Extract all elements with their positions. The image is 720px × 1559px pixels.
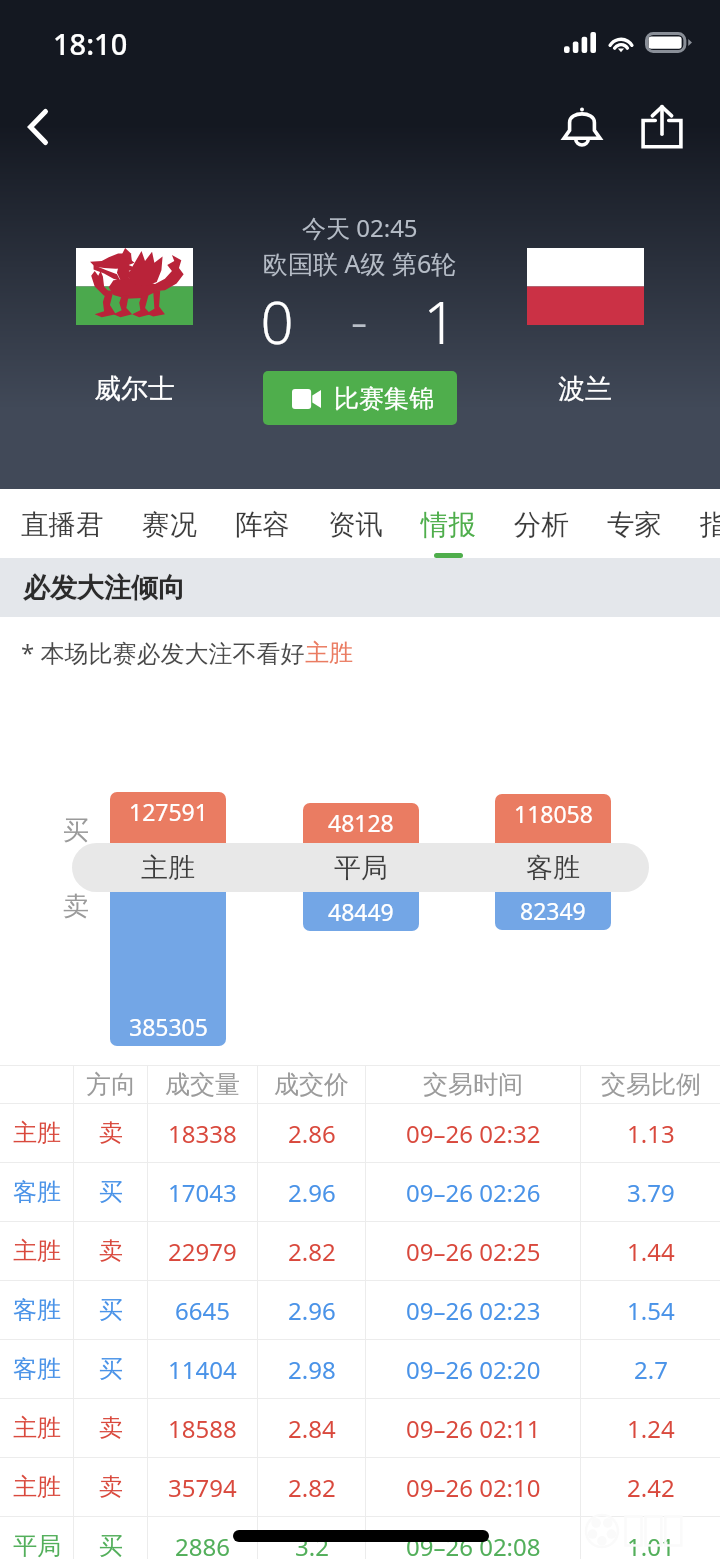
staticText: 卖 <box>99 1118 123 1148</box>
staticText: 赛况 <box>142 508 197 543</box>
staticText: 波兰 <box>558 372 612 406</box>
staticText: 2.86 <box>288 1117 336 1150</box>
staticText: 威尔士 <box>94 372 175 406</box>
staticText: 17043 <box>168 1176 237 1209</box>
staticText: 09–26 02:23 <box>406 1294 541 1327</box>
staticText: 18338 <box>168 1117 237 1150</box>
staticText: 指 <box>700 508 720 543</box>
staticText: 09–26 02:08 <box>406 1530 541 1559</box>
button[interactable]: Share <box>626 90 698 162</box>
staticText: 2.96 <box>288 1294 336 1327</box>
staticText: 主胜 <box>141 851 195 885</box>
staticText: 买 <box>99 1531 123 1559</box>
staticText: 22979 <box>168 1235 237 1268</box>
button[interactable]: Back <box>2 91 74 163</box>
staticText: 欧国联 A级 第6轮 <box>263 246 457 280</box>
staticText: 情报 <box>421 508 476 543</box>
staticText: 1.54 <box>627 1294 675 1327</box>
staticText: 3.79 <box>627 1176 675 1209</box>
staticText: 比赛集锦 <box>334 383 434 414</box>
button[interactable]: 情报 <box>402 493 495 557</box>
staticText: 成交量 <box>165 1069 240 1100</box>
staticText: 09–26 02:32 <box>406 1117 541 1150</box>
staticText: 18:10 <box>53 24 128 63</box>
staticText: 买 <box>99 1295 123 1325</box>
button[interactable]: Notifications <box>546 90 618 162</box>
staticText: 48449 <box>328 896 394 927</box>
staticText: 直播君 <box>21 508 104 543</box>
staticText: 1.13 <box>627 1117 675 1150</box>
staticText: 方向 <box>86 1069 136 1100</box>
staticText: 11404 <box>168 1353 237 1386</box>
staticText: 1 <box>420 282 460 361</box>
staticText: 卖 <box>63 890 89 923</box>
staticText: 主胜 <box>305 638 353 668</box>
staticText: 平局 <box>13 1531 61 1559</box>
staticText: 09–26 02:25 <box>406 1235 541 1268</box>
staticText: 48128 <box>328 807 394 838</box>
button[interactable]: 专家 <box>588 493 681 557</box>
staticText: 买 <box>99 1354 123 1384</box>
staticText: 资讯 <box>328 508 383 543</box>
staticText: 专家 <box>607 508 662 543</box>
staticText: 主胜 <box>13 1413 61 1443</box>
staticText: 主胜 <box>13 1118 61 1148</box>
staticText: 2886 <box>175 1530 230 1559</box>
staticText: 主胜 <box>13 1236 61 1266</box>
staticText: 6645 <box>175 1294 230 1327</box>
staticText: * 本场比赛必发大注不看好 <box>21 636 305 669</box>
button[interactable]: 直播君 <box>21 493 123 557</box>
staticText: 2.82 <box>288 1235 336 1268</box>
button[interactable]: 资讯 <box>309 493 402 557</box>
staticText: 1.44 <box>627 1235 675 1268</box>
staticText: 买 <box>63 814 89 847</box>
staticText: 09–26 02:11 <box>406 1412 541 1445</box>
staticText: 3.2 <box>295 1530 329 1559</box>
staticText: 2.42 <box>627 1471 675 1504</box>
staticText: 2.7 <box>634 1353 668 1386</box>
staticText: 成交价 <box>274 1069 349 1100</box>
staticText: 客胜 <box>13 1177 61 1207</box>
staticText: 2.96 <box>288 1176 336 1209</box>
staticText: 09–26 02:26 <box>406 1176 541 1209</box>
staticText: 客胜 <box>526 851 580 885</box>
staticText: 客胜 <box>13 1295 61 1325</box>
staticText: 客胜 <box>13 1354 61 1384</box>
staticText: 卖 <box>99 1236 123 1266</box>
button[interactable]: 赛况 <box>123 493 216 557</box>
staticText: 118058 <box>514 798 593 829</box>
staticText: 385305 <box>129 1011 208 1042</box>
staticText: 分析 <box>514 508 569 543</box>
button[interactable]: 阵容 <box>216 493 309 557</box>
staticText: 09–26 02:10 <box>406 1471 541 1504</box>
staticText: 阵容 <box>235 508 290 543</box>
staticText: 2.98 <box>288 1353 336 1386</box>
staticText: - <box>339 284 379 355</box>
staticText: 0 <box>257 282 297 361</box>
button[interactable]: 分析 <box>495 493 588 557</box>
staticText: 买 <box>99 1177 123 1207</box>
staticText: 交易时间 <box>423 1069 523 1100</box>
staticText: 交易比例 <box>601 1069 701 1100</box>
staticText: 今天 02:45 <box>302 211 418 244</box>
staticText: 82349 <box>520 895 586 926</box>
button[interactable]: 指 <box>681 493 720 557</box>
staticText: 2.84 <box>288 1412 336 1445</box>
staticText: 2.82 <box>288 1471 336 1504</box>
staticText: 必发大注倾向 <box>23 571 185 605</box>
staticText: 1.24 <box>627 1412 675 1445</box>
staticText: 主胜 <box>13 1472 61 1502</box>
staticText: 平局 <box>334 851 388 885</box>
staticText: 18588 <box>168 1412 237 1445</box>
staticText: 卖 <box>99 1472 123 1502</box>
staticText: 09–26 02:20 <box>406 1353 541 1386</box>
staticText: 1.01 <box>627 1530 675 1559</box>
staticText: 卖 <box>99 1413 123 1443</box>
staticText: 35794 <box>168 1471 237 1504</box>
button[interactable]: 比赛集锦 <box>263 371 457 425</box>
staticText: 127591 <box>129 796 208 827</box>
